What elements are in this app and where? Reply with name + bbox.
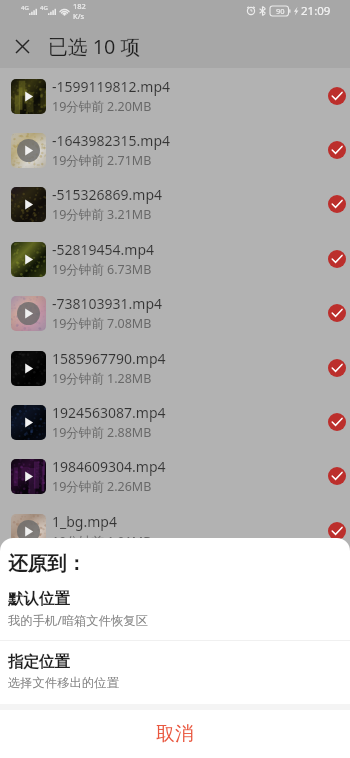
staticText: 19分钟前 7.08MB xyxy=(52,315,152,332)
button[interactable]: 1_bg.mp4 xyxy=(0,504,350,558)
button[interactable]: Selected xyxy=(328,250,346,268)
staticText: 1924563087.mp4 xyxy=(52,403,166,422)
button[interactable]: -1599119812.mp4 xyxy=(0,69,350,123)
button[interactable]: Selected xyxy=(328,141,346,159)
staticText: 选择文件移出的位置 xyxy=(8,675,119,690)
staticText: -738103931.mp4 xyxy=(52,294,163,313)
button[interactable]: Selected xyxy=(328,467,346,485)
button[interactable]: -1643982315.mp4 xyxy=(0,123,350,177)
staticText: -515326869.mp4 xyxy=(52,185,163,204)
staticText: 已选 10 项 xyxy=(48,33,141,60)
button[interactable]: 1924563087.mp4 xyxy=(0,395,350,449)
staticText: 4G xyxy=(21,4,29,12)
staticText: -1643982315.mp4 xyxy=(52,131,171,150)
staticText: 默认位置 xyxy=(8,589,70,609)
staticText: 90 xyxy=(276,6,285,16)
staticText: 指定位置 xyxy=(8,652,70,672)
button[interactable]: 1585967790.mp4 xyxy=(0,341,350,395)
staticText: 1585967790.mp4 xyxy=(52,349,166,368)
button[interactable]: 默认位置 xyxy=(0,585,350,639)
button[interactable]: Selected xyxy=(328,522,346,540)
staticText: -1599119812.mp4 xyxy=(52,77,171,96)
button[interactable]: Selected xyxy=(328,413,346,431)
staticText: 182 xyxy=(73,1,86,11)
staticText: 4G xyxy=(40,4,48,12)
button[interactable]: Selected xyxy=(328,304,346,322)
button[interactable]: -52819454.mp4 xyxy=(0,232,350,286)
staticText: 还原到： xyxy=(8,551,86,576)
staticText: K/s xyxy=(73,11,85,21)
staticText: 19分钟前 2.20MB xyxy=(52,98,152,115)
button[interactable]: Selected xyxy=(328,195,346,213)
staticText: -52819454.mp4 xyxy=(52,240,155,259)
button[interactable]: Selected xyxy=(328,359,346,377)
staticText: 21:09 xyxy=(301,3,331,19)
staticText: 19分钟前 3.21MB xyxy=(52,206,152,223)
staticText: 1984609304.mp4 xyxy=(52,457,166,476)
staticText: 19分钟前 1.91MB xyxy=(52,533,152,550)
staticText: 19分钟前 2.26MB xyxy=(52,478,152,495)
button[interactable]: Close selection xyxy=(0,24,44,68)
button[interactable]: -515326869.mp4 xyxy=(0,177,350,231)
staticText: 我的手机/暗箱文件恢复区 xyxy=(8,612,148,629)
button[interactable]: -738103931.mp4 xyxy=(0,286,350,340)
staticText: 1_bg.mp4 xyxy=(52,512,117,531)
button[interactable]: 取消 xyxy=(0,710,350,758)
button[interactable]: 1984609304.mp4 xyxy=(0,449,350,503)
button[interactable]: 指定位置 xyxy=(0,648,350,700)
button[interactable]: Selected xyxy=(328,87,346,105)
staticText: 19分钟前 2.71MB xyxy=(52,152,152,169)
staticText: 取消 xyxy=(156,722,194,746)
staticText: 19分钟前 1.28MB xyxy=(52,370,152,387)
staticText: 19分钟前 2.88MB xyxy=(52,424,152,441)
staticText: 19分钟前 6.73MB xyxy=(52,261,152,278)
